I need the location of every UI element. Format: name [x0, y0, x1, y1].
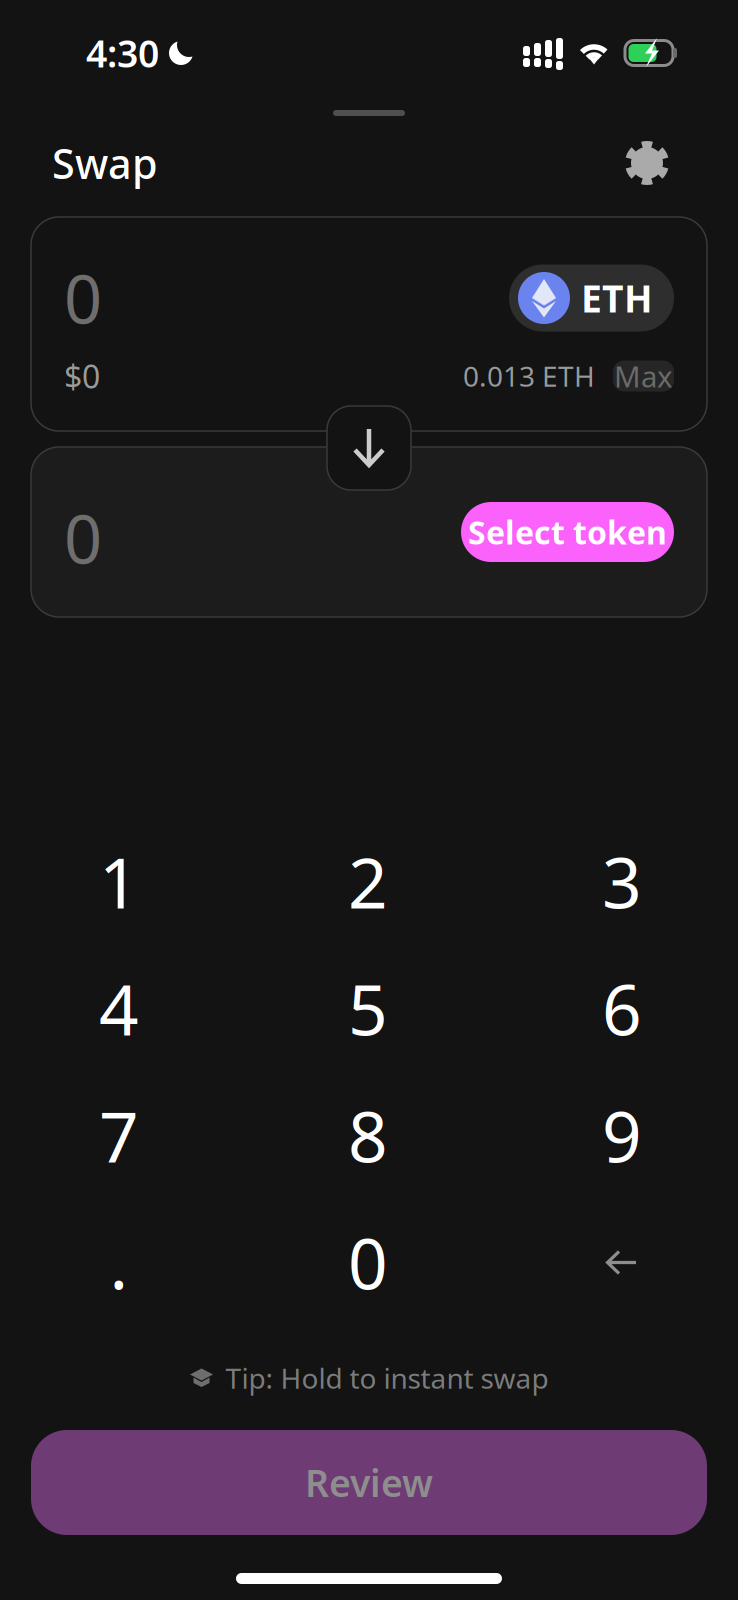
staticText: Review — [305, 1458, 433, 1507]
staticText: Select token — [468, 511, 667, 553]
button[interactable]: ETH — [509, 264, 674, 331]
button[interactable]: 6 — [492, 945, 738, 1072]
button[interactable]: Max — [613, 360, 674, 391]
staticText: Max — [614, 356, 673, 395]
staticText: 8 — [348, 1089, 388, 1182]
staticText: $0 — [64, 355, 100, 397]
button[interactable]: Select token — [461, 502, 674, 562]
button[interactable]: 0 — [246, 1199, 492, 1326]
staticText: . — [109, 1216, 128, 1309]
staticText: 0 — [348, 1216, 388, 1309]
staticText: 1 — [99, 835, 139, 928]
button[interactable]: 8 — [246, 1072, 492, 1199]
staticText: 4:30 — [86, 28, 159, 78]
staticText: 0 — [64, 254, 102, 342]
staticText: ETH — [581, 273, 653, 323]
staticText: 0.013 ETH — [463, 357, 595, 395]
button[interactable]: Settings — [617, 133, 677, 193]
staticText: 4 — [99, 962, 139, 1055]
staticText: 6 — [602, 962, 642, 1055]
staticText: 3 — [602, 835, 642, 928]
button[interactable]: 2 — [246, 818, 492, 945]
button[interactable]: Swap direction — [327, 406, 411, 490]
staticText: Swap — [52, 136, 158, 190]
button[interactable]: 5 — [246, 945, 492, 1072]
staticText: 5 — [348, 962, 388, 1055]
staticText: Tip: Hold to instant swap — [225, 1359, 548, 1397]
button[interactable]: 9 — [492, 1072, 738, 1199]
staticText: 2 — [348, 835, 388, 928]
button[interactable]: 3 — [492, 818, 738, 945]
button[interactable]: 4 — [0, 945, 246, 1072]
button[interactable]: 7 — [0, 1072, 246, 1199]
staticText: 0 — [64, 494, 102, 582]
button[interactable]: Delete — [492, 1199, 738, 1326]
button[interactable]: 1 — [0, 818, 246, 945]
button[interactable]: . — [0, 1199, 246, 1326]
button[interactable]: Review — [31, 1430, 707, 1535]
staticText: 9 — [602, 1089, 642, 1182]
staticText: 7 — [99, 1089, 139, 1182]
